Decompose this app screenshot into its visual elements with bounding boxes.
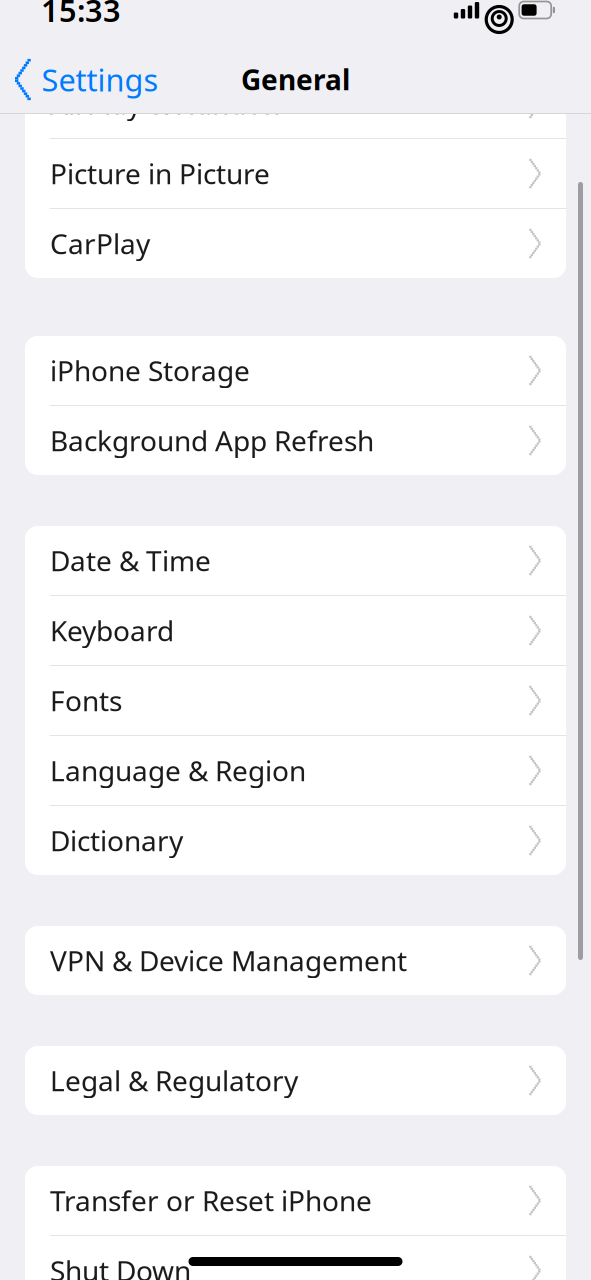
button[interactable]: Picture in Picture	[25, 139, 566, 208]
button[interactable]: Date & Time	[25, 526, 566, 595]
button[interactable]: Background App Refresh	[25, 406, 566, 475]
staticText: CarPlay	[50, 225, 150, 262]
staticText: Language & Region	[50, 752, 306, 789]
staticText: VPN & Device Management	[50, 942, 407, 979]
button[interactable]: Fonts	[25, 666, 566, 735]
button[interactable]: Legal & Regulatory	[25, 1046, 566, 1115]
staticText: Legal & Regulatory	[50, 1062, 298, 1099]
staticText: AirPlay & Handoff	[50, 85, 282, 122]
staticText: Settings	[41, 59, 158, 100]
button[interactable]: iPhone Storage	[25, 336, 566, 405]
staticText: Transfer or Reset iPhone	[50, 1182, 372, 1219]
staticText: Background App Refresh	[50, 422, 374, 459]
button[interactable]: Keyboard	[25, 596, 566, 665]
button[interactable]: CarPlay	[25, 209, 566, 278]
staticText: Picture in Picture	[50, 155, 270, 192]
staticText: General	[241, 61, 350, 98]
staticText: Shut Down	[50, 1252, 191, 1280]
button[interactable]: Language & Region	[25, 736, 566, 805]
button[interactable]: AirPlay & Handoff	[25, 69, 566, 138]
button[interactable]: Settings	[0, 50, 158, 109]
staticText: iPhone Storage	[50, 352, 250, 389]
staticText: Keyboard	[50, 612, 174, 649]
staticText: Date & Time	[50, 542, 211, 579]
button[interactable]: Shut Down	[25, 1236, 566, 1280]
staticText: Fonts	[50, 682, 122, 719]
button[interactable]: Transfer or Reset iPhone	[25, 1166, 566, 1235]
button[interactable]: VPN & Device Management	[25, 926, 566, 995]
staticText: Dictionary	[50, 822, 183, 859]
button[interactable]: Dictionary	[25, 806, 566, 875]
staticText: 15:33	[41, 0, 121, 30]
